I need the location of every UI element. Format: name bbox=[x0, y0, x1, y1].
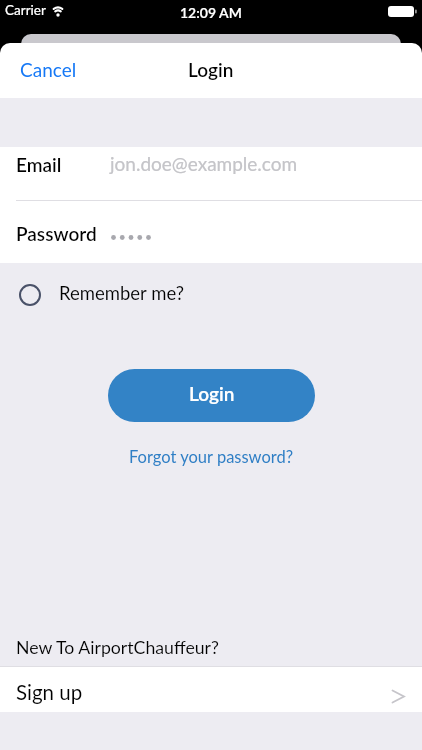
staticText: Remember me? bbox=[59, 282, 184, 304]
staticText: Cancel bbox=[20, 58, 77, 81]
staticText: Email bbox=[16, 153, 62, 176]
staticText: Password bbox=[16, 222, 97, 245]
staticText: Sign up bbox=[16, 680, 83, 705]
staticText: 12:09 AM bbox=[180, 4, 242, 21]
staticText: Login bbox=[188, 58, 234, 81]
staticText: Forgot your password? bbox=[129, 447, 294, 467]
staticText: Login bbox=[189, 382, 235, 405]
staticText: jon.doe@example.com bbox=[110, 152, 298, 175]
staticText: Carrier bbox=[5, 2, 46, 18]
staticText: New To AirportChauffeur? bbox=[16, 637, 219, 658]
